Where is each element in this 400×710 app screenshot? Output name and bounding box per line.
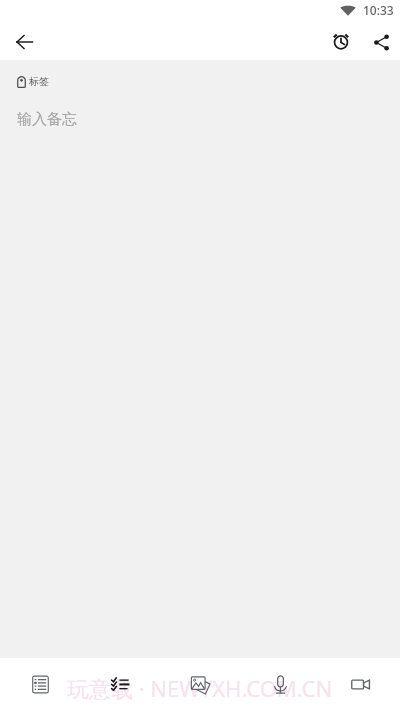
button[interactable]: Back (8, 26, 40, 58)
staticText: 玩意载 · NEWYXH.COM.CN (67, 673, 333, 703)
staticText: 输入备忘 (17, 110, 77, 129)
button[interactable]: Voice note (240, 658, 320, 710)
button[interactable]: Notes list (0, 658, 80, 710)
button[interactable]: 标签 (17, 75, 49, 88)
button[interactable]: Checklist (80, 658, 160, 710)
button[interactable]: Add photo (160, 658, 240, 710)
staticText: 标签 (29, 75, 49, 88)
staticText: 10:33 (363, 2, 394, 18)
button[interactable]: Video (320, 658, 400, 710)
button[interactable]: Share (363, 24, 399, 60)
button[interactable]: Reminder (323, 24, 359, 60)
